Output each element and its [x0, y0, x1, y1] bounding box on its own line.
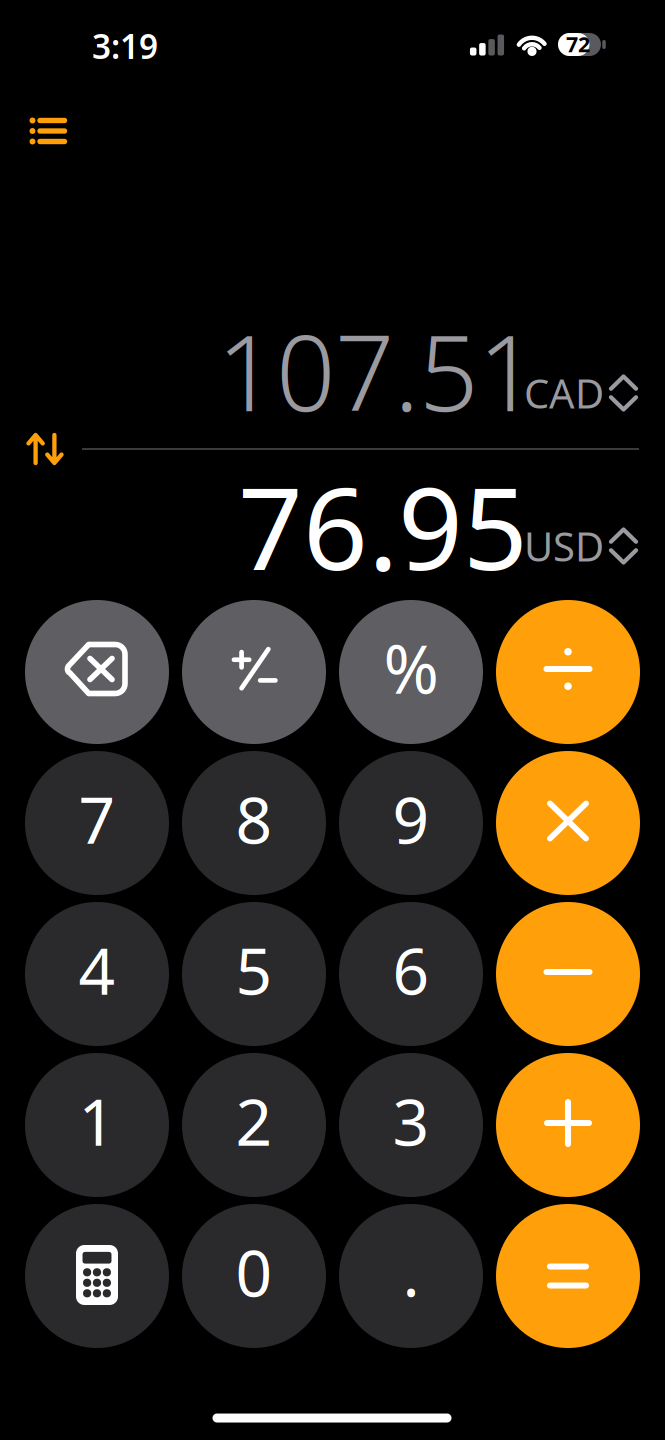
staticText: 3:19: [92, 24, 158, 68]
button[interactable]: Change target currency: [518, 513, 642, 578]
staticText: 8: [235, 776, 272, 861]
button[interactable]: .: [339, 1204, 483, 1348]
staticText: 9: [392, 776, 429, 861]
staticText: .: [402, 1229, 419, 1314]
button[interactable]: 3: [339, 1053, 483, 1197]
staticText: 2: [235, 1078, 272, 1163]
button[interactable]: Plus minus: [182, 600, 326, 744]
button[interactable]: History: [11, 102, 82, 159]
button[interactable]: Calculator: [25, 1204, 169, 1348]
button[interactable]: 2: [182, 1053, 326, 1197]
staticText: 107.51: [217, 302, 537, 440]
staticText: 72: [566, 30, 590, 58]
button[interactable]: 5: [182, 902, 326, 1046]
button[interactable]: Equals: [496, 1204, 640, 1348]
button[interactable]: Divide: [496, 600, 640, 744]
button[interactable]: Plus: [496, 1053, 640, 1197]
button[interactable]: Delete: [25, 600, 169, 744]
button[interactable]: 4: [25, 902, 169, 1046]
button[interactable]: Change source currency: [518, 360, 642, 425]
button[interactable]: Swap currencies: [12, 419, 77, 479]
staticText: USD: [524, 519, 604, 572]
button[interactable]: Minus: [496, 902, 640, 1046]
button[interactable]: 0: [182, 1204, 326, 1348]
staticText: 6: [392, 927, 429, 1012]
button[interactable]: 1: [25, 1053, 169, 1197]
staticText: 7: [78, 776, 115, 861]
button[interactable]: Multiply: [496, 751, 640, 895]
staticText: %: [383, 624, 438, 712]
button[interactable]: 7: [25, 751, 169, 895]
staticText: 4: [78, 927, 115, 1012]
staticText: 5: [235, 927, 272, 1012]
button[interactable]: 8: [182, 751, 326, 895]
button[interactable]: 9: [339, 751, 483, 895]
staticText: CAD: [524, 366, 604, 419]
button[interactable]: 6: [339, 902, 483, 1046]
staticText: 0: [235, 1229, 272, 1314]
staticText: 1: [78, 1078, 115, 1163]
staticText: 76.95: [238, 451, 528, 601]
button[interactable]: Percent: [339, 600, 483, 744]
staticText: 3: [392, 1078, 429, 1163]
